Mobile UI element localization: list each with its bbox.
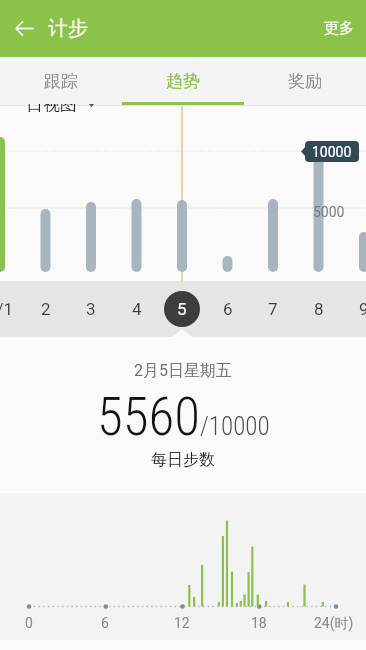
staticText: 更多 (324, 19, 354, 38)
staticText: 5000 (313, 204, 345, 220)
button[interactable]: 3 (73, 291, 109, 327)
staticText: 24(时) (314, 615, 354, 633)
staticText: 4 (132, 299, 142, 319)
button[interactable]: 更多 (312, 0, 366, 57)
staticText: 8 (314, 299, 324, 319)
button[interactable]: 趋势 (122, 57, 244, 106)
staticText: 18 (251, 615, 267, 631)
button[interactable]: 8 (301, 291, 337, 327)
staticText: /10000 (200, 412, 270, 441)
button[interactable]: 跟踪 (0, 57, 122, 106)
staticText: 12 (174, 615, 190, 631)
button[interactable]: 奖励 (244, 57, 366, 106)
staticText: 3 (86, 299, 96, 319)
staticText: 5560 (97, 386, 200, 448)
button[interactable]: 2/1 (0, 291, 18, 327)
button[interactable]: 2 (28, 291, 64, 327)
staticText: 10000 (312, 144, 352, 160)
staticText: 趋势 (166, 71, 200, 92)
staticText: 6 (223, 299, 233, 319)
staticText: 2/1 (0, 299, 14, 319)
staticText: 0 (25, 615, 33, 631)
staticText: 2月5日星期五 (134, 361, 232, 381)
staticText: 日视图 (26, 104, 77, 112)
staticText: 9 (359, 299, 366, 319)
button[interactable]: 9 (346, 291, 366, 327)
staticText: 每日步数 (151, 450, 215, 470)
button[interactable]: 5 (164, 291, 200, 327)
button[interactable]: 日视图 (26, 104, 95, 112)
staticText: 2 (41, 299, 51, 319)
button[interactable]: 6 (210, 291, 246, 327)
staticText: 跟踪 (44, 71, 78, 92)
button[interactable]: Back (0, 0, 48, 57)
staticText: 奖励 (288, 71, 322, 92)
staticText: 计步 (48, 16, 88, 41)
staticText: 5 (177, 299, 187, 319)
button[interactable]: 7 (255, 291, 291, 327)
staticText: 6 (101, 615, 109, 631)
staticText: 7 (268, 299, 278, 319)
button[interactable]: 4 (119, 291, 155, 327)
